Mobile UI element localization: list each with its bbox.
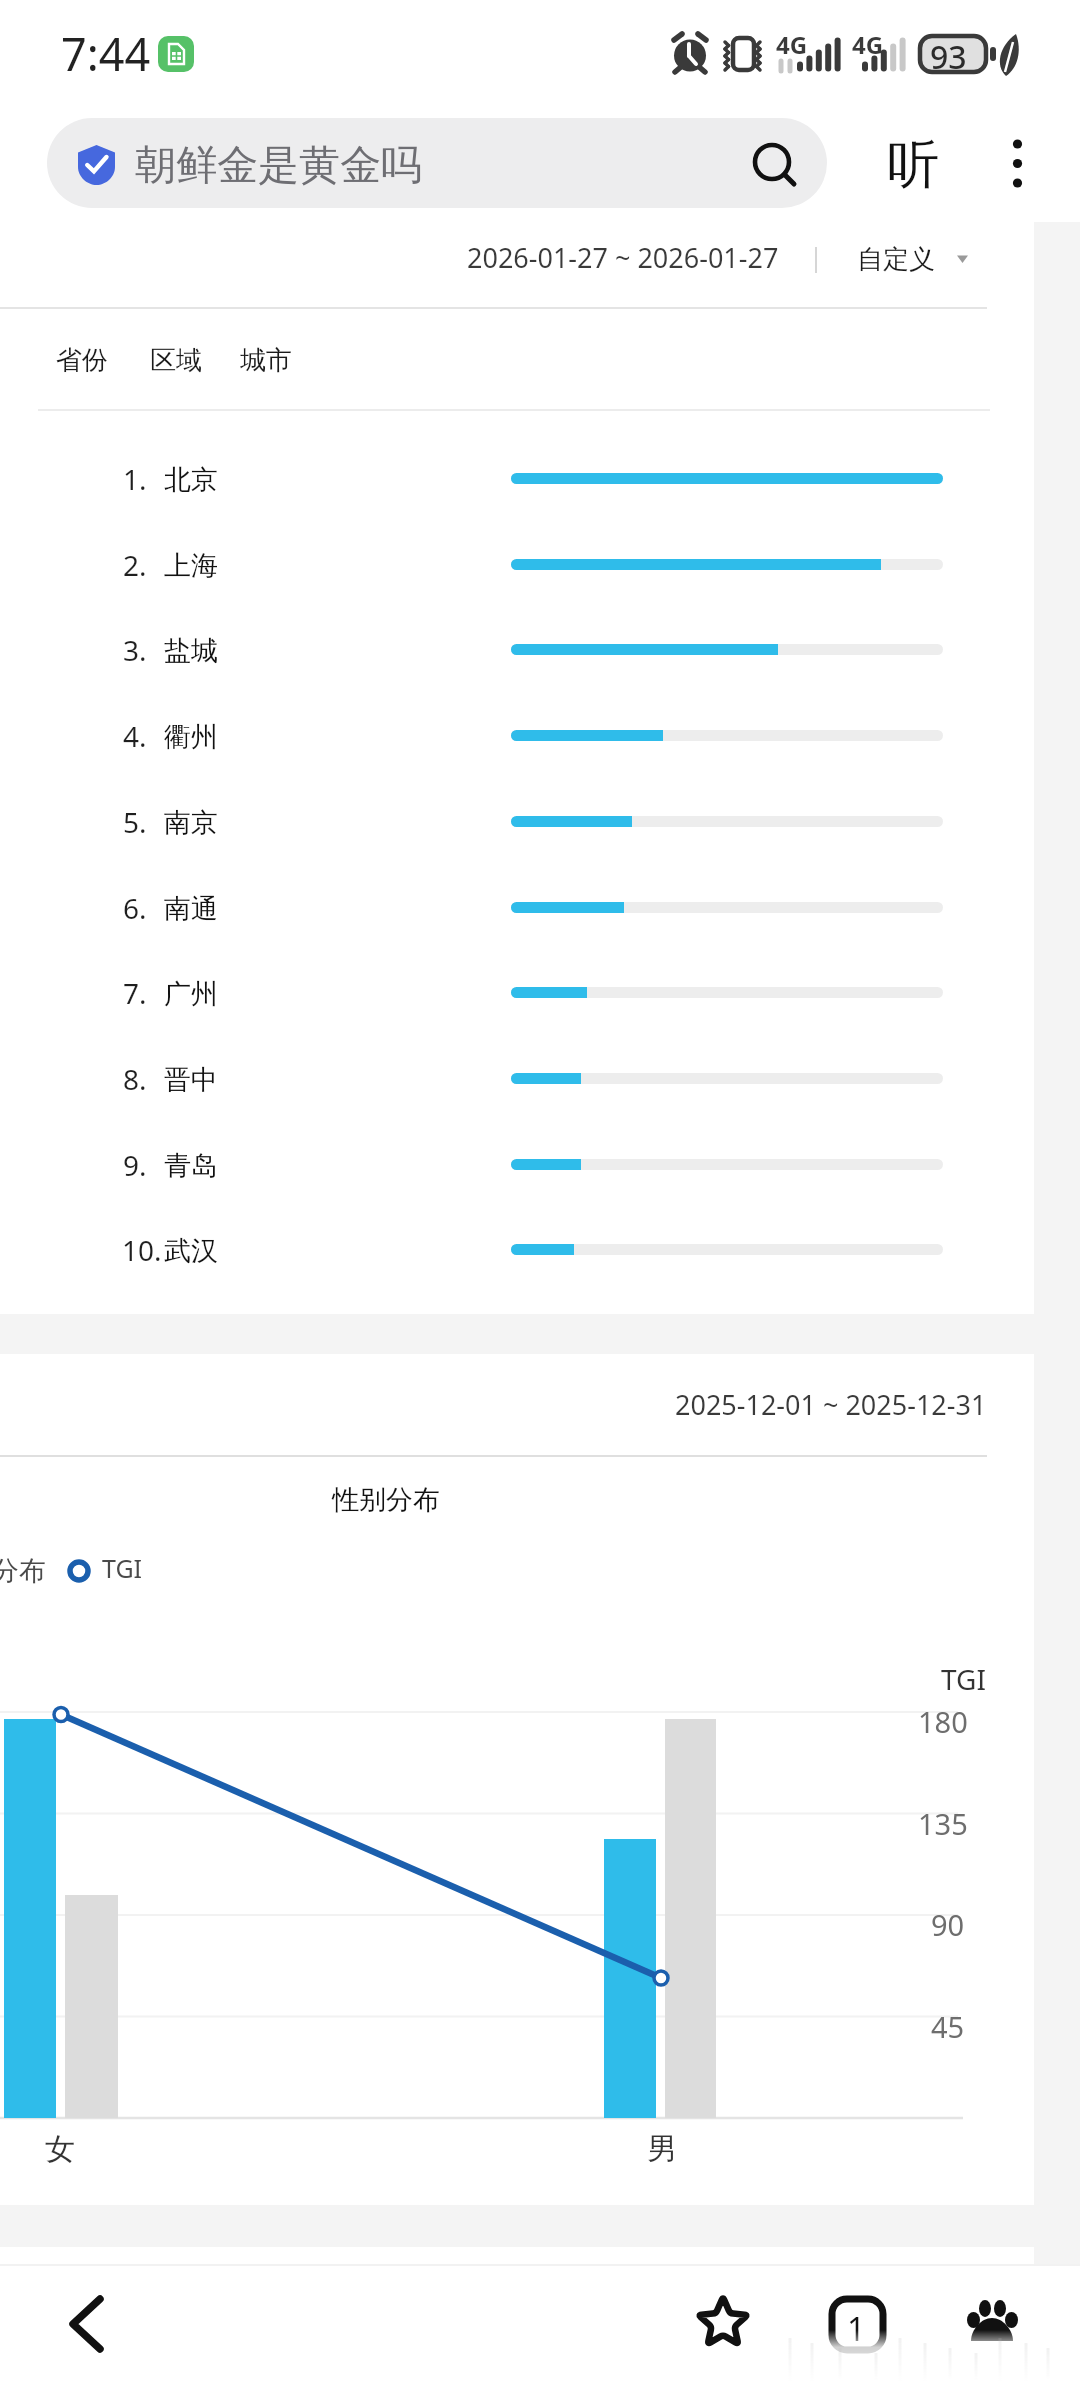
staticText: 10. xyxy=(122,1231,162,1269)
button[interactable]: 自定义 xyxy=(857,243,968,276)
staticText: 45 xyxy=(931,2007,965,2046)
staticText: 性别分布 xyxy=(332,1483,440,1517)
button[interactable]: Favourite xyxy=(688,2288,758,2358)
staticText: 盐城 xyxy=(164,634,218,668)
button[interactable]: 6. xyxy=(0,865,1080,950)
button[interactable]: 2. xyxy=(0,522,1080,607)
staticText: 女 xyxy=(45,2130,75,2168)
button[interactable]: 8. xyxy=(0,1036,1080,1121)
button[interactable]: More options xyxy=(996,126,1042,202)
staticText: 自定义 xyxy=(857,243,935,276)
staticText: 3. xyxy=(123,631,147,669)
staticText: 180 xyxy=(918,1702,968,1741)
staticText: 晋中 xyxy=(164,1063,218,1097)
staticText: 135 xyxy=(918,1804,968,1843)
staticText: 4G xyxy=(776,28,808,61)
staticText: 衢州 xyxy=(164,720,218,754)
staticText: 6. xyxy=(123,889,147,927)
staticText: 93 xyxy=(930,35,967,79)
button[interactable]: Search xyxy=(741,131,809,199)
button[interactable]: 1. xyxy=(0,436,1080,521)
staticText: 区域 xyxy=(150,344,202,377)
button[interactable]: 省份 xyxy=(56,344,150,377)
button[interactable]: 城市 xyxy=(240,344,292,377)
button[interactable]: 听 xyxy=(887,132,949,208)
staticText: 省份 xyxy=(56,344,108,377)
staticText: TGI xyxy=(102,1551,143,1585)
staticText: 4. xyxy=(123,717,147,755)
staticText: TGI xyxy=(941,1660,986,1698)
staticText: 南通 xyxy=(164,892,218,926)
button[interactable]: 3. xyxy=(0,607,1080,692)
staticText: 90 xyxy=(931,1905,965,1944)
staticText: 分布 xyxy=(0,1554,46,1588)
button[interactable]: 10. xyxy=(0,1207,1080,1292)
staticText: 广州 xyxy=(164,977,218,1011)
staticText: 4G xyxy=(852,28,884,61)
staticText: 7. xyxy=(123,974,147,1012)
staticText: 青岛 xyxy=(164,1149,218,1183)
staticText: 2026-01-27 ~ 2026-01-27 xyxy=(467,239,779,276)
staticText: 9. xyxy=(123,1146,147,1184)
staticText: 听 xyxy=(887,132,939,198)
staticText: 城市 xyxy=(240,344,292,377)
staticText: 武汉 xyxy=(164,1234,218,1268)
button[interactable]: 5. xyxy=(0,779,1080,864)
button[interactable]: 9. xyxy=(0,1122,1080,1207)
staticText: 7:44 xyxy=(61,23,151,84)
staticText: 南京 xyxy=(164,806,218,840)
button[interactable]: Baidu home xyxy=(960,2292,1030,2354)
staticText: 1. xyxy=(123,460,147,498)
button[interactable]: 4. xyxy=(0,693,1080,778)
staticText: 8. xyxy=(123,1060,147,1098)
button[interactable]: 朝鲜金是黄金吗 xyxy=(47,118,827,208)
staticText: 朝鲜金是黄金吗 xyxy=(135,140,422,192)
staticText: 上海 xyxy=(164,549,218,583)
button[interactable]: 7. xyxy=(0,950,1080,1035)
button[interactable]: Tabs xyxy=(822,2289,894,2361)
staticText: 2. xyxy=(123,546,147,584)
staticText: 2025-12-01 ~ 2025-12-31 xyxy=(675,1386,987,1423)
staticText: 北京 xyxy=(164,463,218,497)
staticText: 1 xyxy=(847,2307,866,2351)
button[interactable]: Back xyxy=(55,2285,125,2365)
staticText: 5. xyxy=(123,803,147,841)
button[interactable]: 区域 xyxy=(150,344,240,377)
staticText: 男 xyxy=(647,2130,677,2168)
